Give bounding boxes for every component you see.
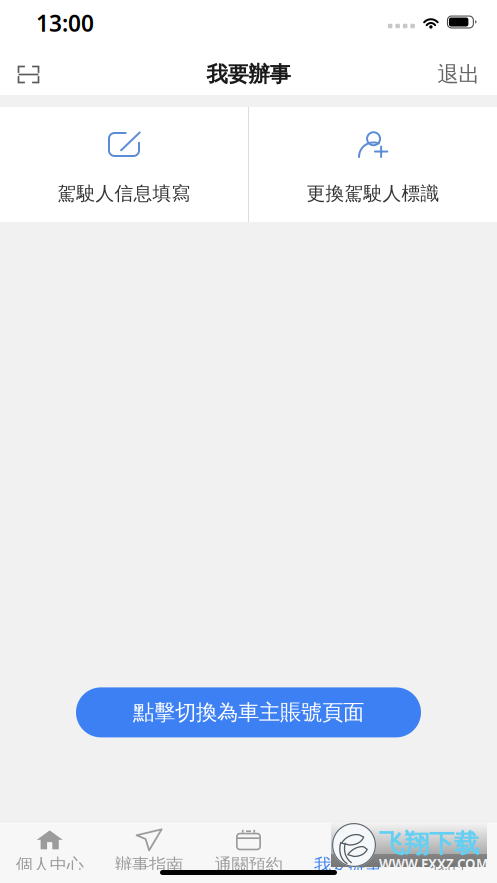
staticText: 13:00 xyxy=(36,8,94,38)
staticText: 飞翔下载 xyxy=(379,828,479,859)
staticText: 我的 xyxy=(430,854,464,876)
button[interactable]: 更換駕駛人標識 xyxy=(249,107,497,222)
staticText: WWW.FXXZ.COM xyxy=(379,855,489,873)
button[interactable]: 我的 xyxy=(398,820,497,872)
button[interactable]: 個人中心 xyxy=(0,820,99,872)
staticText: 點擊切換為車主賬號頁面 xyxy=(133,699,364,725)
staticText: 個人中心 xyxy=(16,854,84,876)
staticText: 通關預約 xyxy=(214,854,282,876)
button[interactable]: Scan xyxy=(0,44,57,95)
button[interactable]: 駕駛人信息填寫 xyxy=(0,107,248,222)
button[interactable]: 辦事指南 xyxy=(99,820,199,872)
button[interactable]: 退出 xyxy=(420,44,497,95)
staticText: 我要辦事 xyxy=(206,61,290,88)
staticText: 退出 xyxy=(437,61,479,88)
button[interactable]: 我要辦事 xyxy=(298,820,398,872)
button[interactable]: 通關預約 xyxy=(199,820,298,872)
staticText: 辦事指南 xyxy=(115,854,183,876)
staticText: 更換駕駛人標識 xyxy=(306,182,439,205)
staticText: 駕駛人信息填寫 xyxy=(57,182,190,205)
button[interactable]: 點擊切換為車主賬號頁面 xyxy=(76,687,421,737)
staticText: 我要辦事 xyxy=(314,854,382,876)
